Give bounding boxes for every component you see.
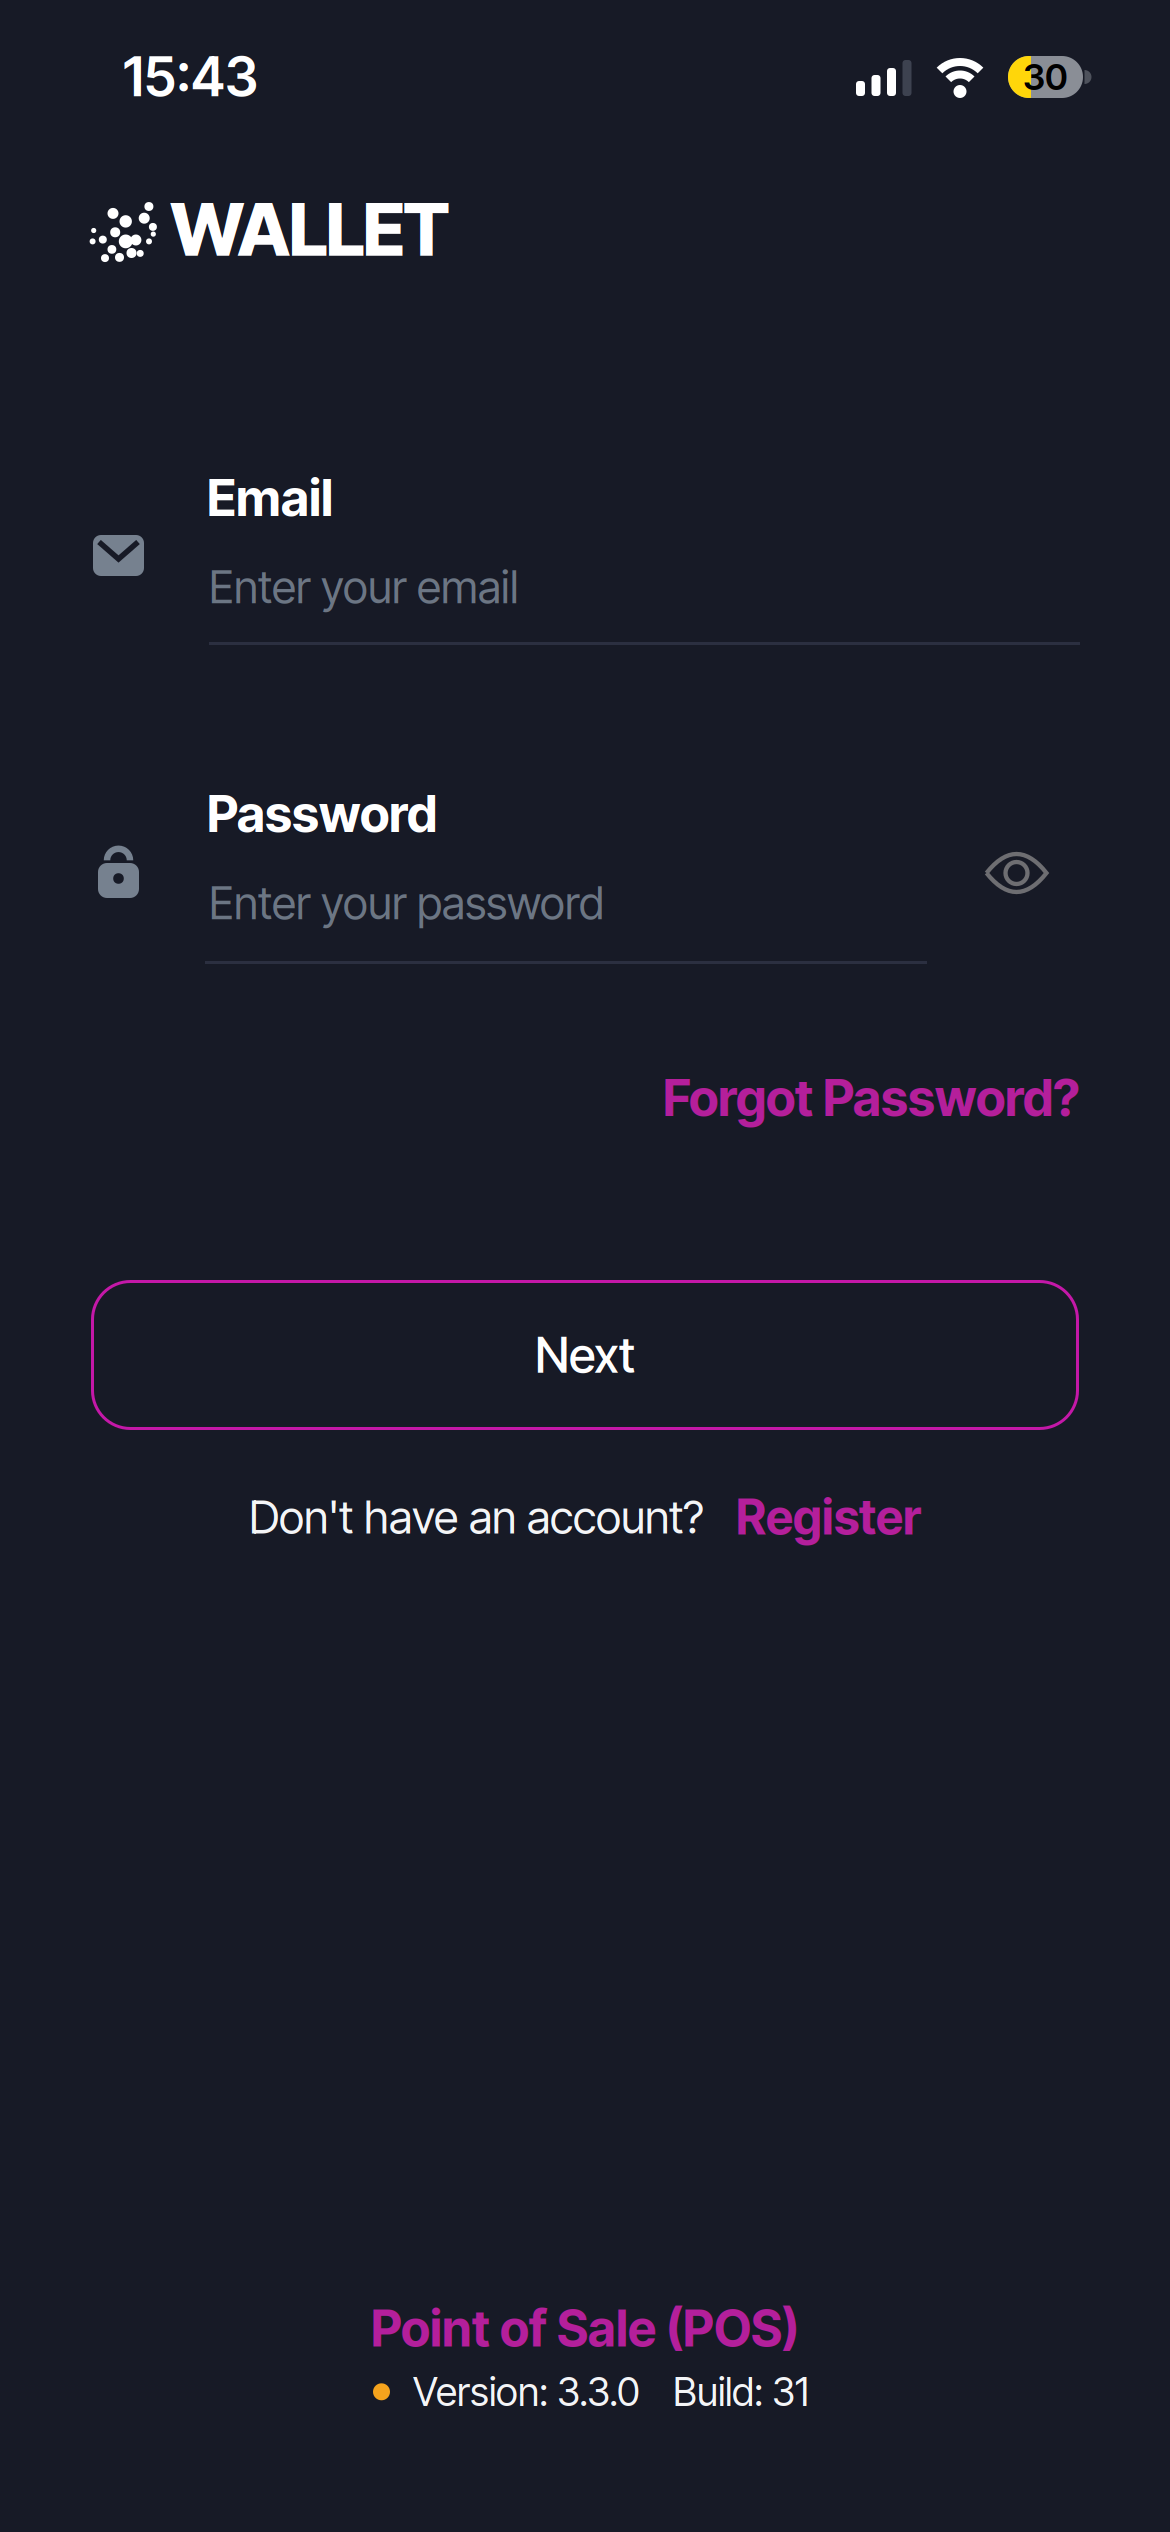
staticText: Point of Sale (POS) xyxy=(371,2298,799,2358)
button[interactable]: Show password xyxy=(984,851,1049,895)
staticText: Register xyxy=(736,1488,921,1546)
button[interactable]: Next xyxy=(91,1280,1079,1430)
staticText: Next xyxy=(535,1326,635,1384)
staticText: 15:43 xyxy=(123,44,258,109)
staticText: Enter your password xyxy=(209,876,604,930)
button[interactable]: Forgot Password? xyxy=(663,1067,1080,1128)
staticText: Password xyxy=(207,783,437,844)
staticText: WALLET xyxy=(170,186,450,273)
staticText: Version: 3.3.0 xyxy=(413,2368,640,2416)
staticText: Don't have an account? xyxy=(249,1490,704,1544)
staticText: Forgot Password? xyxy=(663,1067,1080,1128)
staticText: Email xyxy=(207,467,333,528)
staticText: Enter your email xyxy=(209,560,519,614)
button[interactable]: Register xyxy=(736,1488,921,1546)
staticText: 30 xyxy=(1023,55,1068,99)
staticText: Build: 31 xyxy=(673,2368,809,2416)
